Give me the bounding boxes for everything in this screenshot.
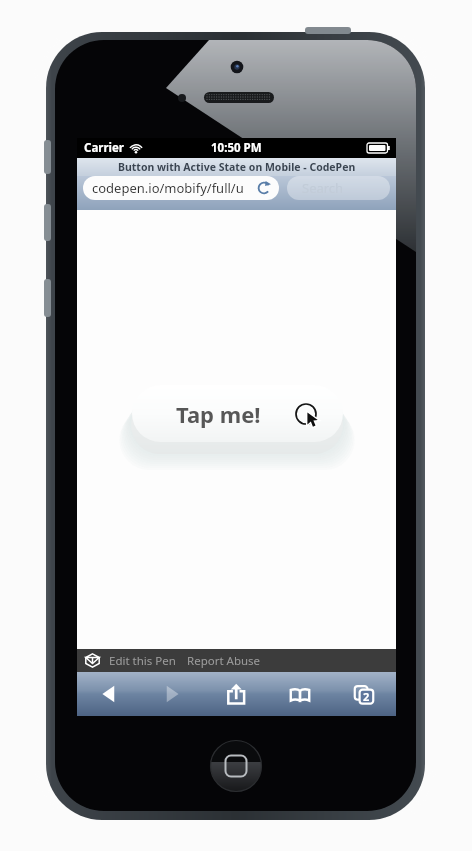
button[interactable]: Forward [140,672,204,716]
button[interactable]: Search [287,176,390,200]
other: Reload [257,181,271,195]
button[interactable]: Edit this Pen [109,653,176,669]
staticText: Search [302,179,344,197]
staticText: 10:50 PM [211,140,262,156]
staticText: Button with Active State on Mobile - Cod… [118,160,356,174]
staticText: codepen.io/mobify/full/u [92,179,244,197]
button[interactable]: Bookmarks [268,672,332,716]
staticText: 2 [363,689,370,704]
staticText: Report Abuse [187,653,261,669]
button[interactable]: Tap me! [132,385,343,442]
button[interactable]: Back [77,672,140,716]
button[interactable]: codepen.io/mobify/full/u [83,176,279,200]
staticText: Carrier [84,140,124,156]
button[interactable]: Share [204,672,268,716]
other: CodePen [85,653,100,668]
staticText: Edit this Pen [109,653,176,669]
button[interactable]: Tabs [332,672,396,716]
staticText: Tap me! [176,399,261,429]
button[interactable]: Report Abuse [187,653,261,669]
